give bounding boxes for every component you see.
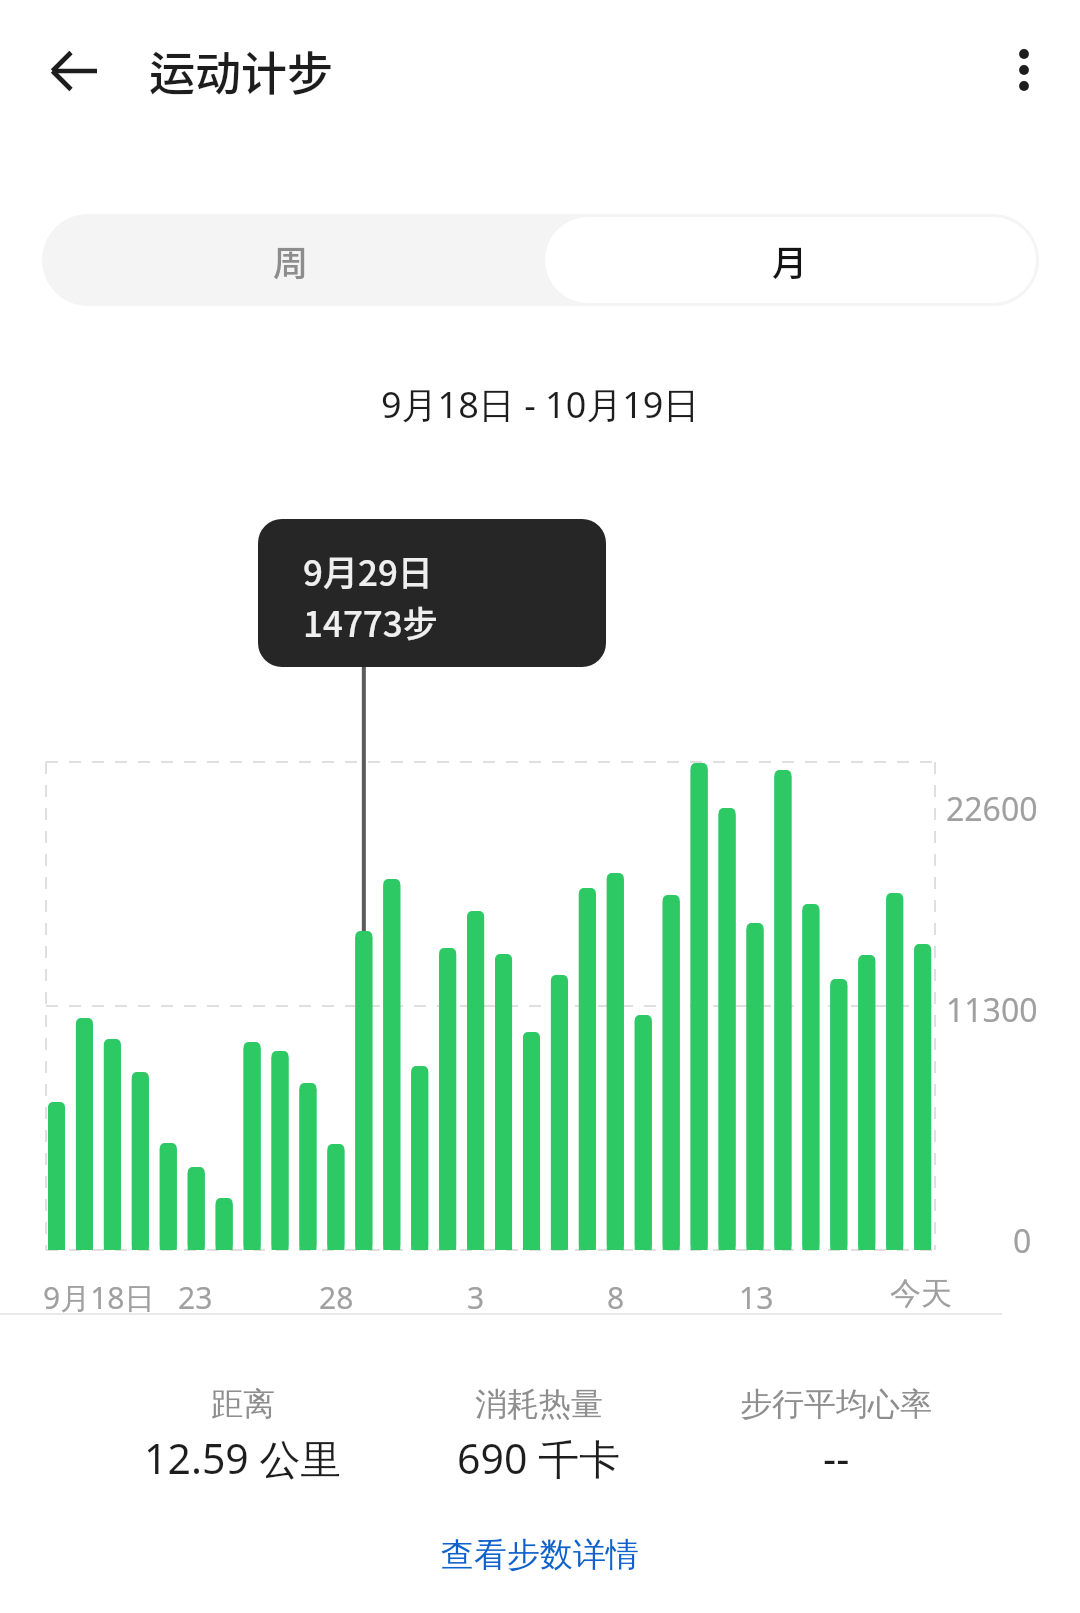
staticText: 今天 bbox=[890, 1274, 952, 1313]
button[interactable]: 周 bbox=[42, 214, 540, 306]
button[interactable]: 月 bbox=[540, 214, 1039, 306]
staticText: 22600 bbox=[946, 787, 1038, 831]
staticText: 查看步数详情 bbox=[441, 1534, 639, 1576]
staticText: 运动计步 bbox=[149, 37, 333, 104]
button[interactable]: More options bbox=[1000, 36, 1048, 84]
staticText: 13 bbox=[739, 1277, 774, 1318]
staticText: 23 bbox=[178, 1277, 213, 1318]
button[interactable]: 查看步数详情 bbox=[417, 1524, 663, 1586]
staticText: 周 bbox=[273, 235, 309, 286]
staticText: 9月18日 - 10月19日 bbox=[381, 380, 700, 429]
staticText: 28 bbox=[319, 1277, 354, 1318]
staticText: 0 bbox=[1013, 1219, 1032, 1263]
staticText: -- bbox=[823, 1430, 850, 1486]
staticText: 消耗热量 bbox=[475, 1384, 603, 1424]
staticText: 8 bbox=[607, 1277, 625, 1318]
staticText: 11300 bbox=[946, 988, 1038, 1032]
staticText: 距离 bbox=[211, 1384, 275, 1424]
staticText: 步行平均心率 bbox=[740, 1384, 932, 1424]
staticText: 9月29日 bbox=[303, 545, 433, 596]
button[interactable]: Back bbox=[33, 40, 95, 102]
staticText: 12.59 公里 bbox=[144, 1430, 342, 1486]
staticText: 月 bbox=[772, 235, 808, 286]
staticText: 690 千卡 bbox=[457, 1430, 621, 1486]
staticText: 9月18日 bbox=[43, 1277, 155, 1318]
staticText: 3 bbox=[467, 1277, 485, 1318]
staticText: 14773步 bbox=[303, 596, 438, 647]
